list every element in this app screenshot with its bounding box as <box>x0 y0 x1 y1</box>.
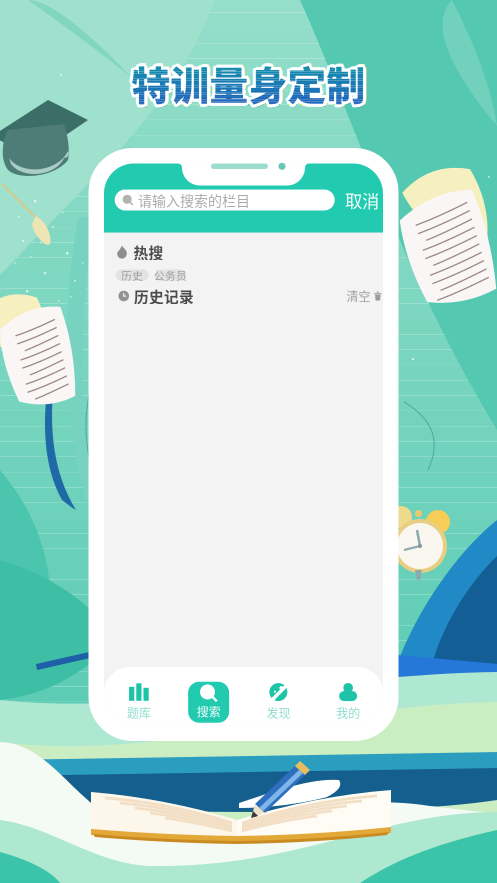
staticText: 特训量身定制 <box>131 52 365 108</box>
staticText: 我的 <box>336 704 360 721</box>
staticText: 特训量身定制 <box>134 56 368 112</box>
button[interactable]: 搜索 <box>174 676 244 728</box>
staticText: 请输入搜索的栏目 <box>138 190 250 210</box>
button[interactable]: 我的 <box>313 676 383 728</box>
staticText: 取消 <box>345 187 379 213</box>
staticText: 热搜 <box>133 241 163 263</box>
button[interactable]: 公务员 <box>154 269 186 281</box>
staticText: 特训量身定制 <box>129 53 363 109</box>
staticText: 清空 <box>347 287 371 305</box>
staticText: 特训量身定制 <box>128 55 362 111</box>
staticText: 特训量身定制 <box>134 53 368 109</box>
button[interactable]: 题库 <box>104 676 174 728</box>
button[interactable]: 取消 <box>344 189 380 210</box>
button[interactable]: 历史 <box>116 269 148 281</box>
staticText: 特训量身定制 <box>131 58 365 114</box>
staticText: 公务员 <box>154 267 187 283</box>
staticText: 历史记录 <box>134 285 194 307</box>
staticText: 特训量身定制 <box>134 55 368 111</box>
button[interactable]: 请输入搜索的栏目 <box>115 189 335 210</box>
staticText: 特训量身定制 <box>129 57 363 113</box>
staticText: 题库 <box>127 704 151 721</box>
staticText: 特训量身定制 <box>134 57 368 113</box>
staticText: 搜索 <box>197 703 221 720</box>
staticText: 特训量身定制 <box>128 53 362 109</box>
button[interactable]: 发现 <box>243 676 313 728</box>
staticText: 特训量身定制 <box>130 58 364 114</box>
staticText: 特训量身定制 <box>133 52 367 108</box>
staticText: 历史 <box>121 267 143 283</box>
staticText: 特训量身定制 <box>134 58 368 114</box>
staticText: 发现 <box>266 704 290 721</box>
